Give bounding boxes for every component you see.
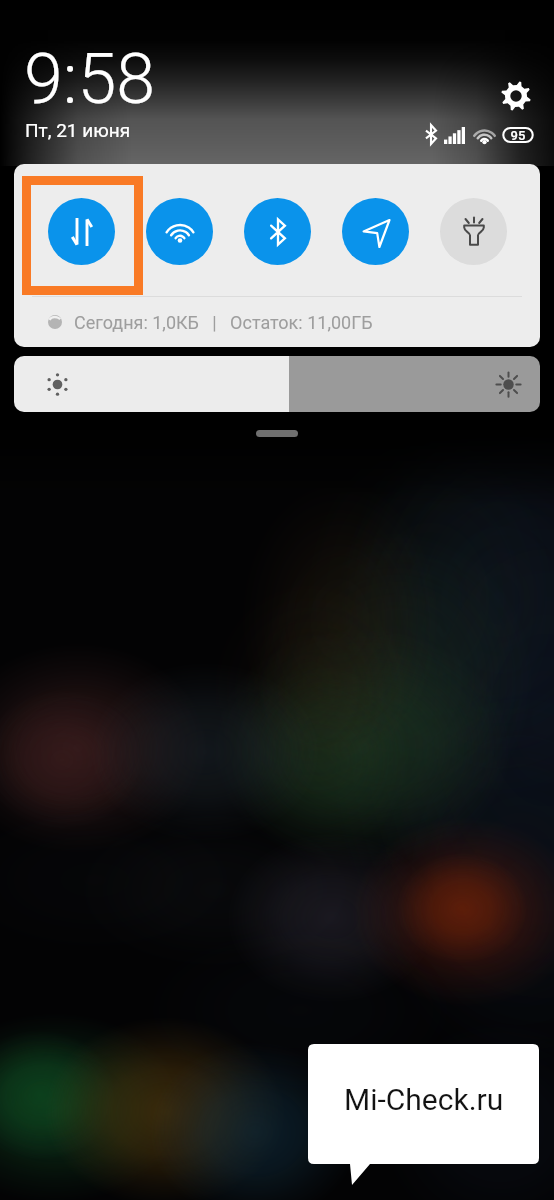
staticText: Пт, 21 июня xyxy=(25,119,131,141)
staticText: Mi-Check.ru xyxy=(344,1082,504,1117)
button[interactable]: Wi-Fi xyxy=(146,198,213,265)
button[interactable]: Mi-Check.ru xyxy=(308,1044,540,1189)
staticText: 95 xyxy=(509,128,527,143)
button[interactable] xyxy=(14,356,540,412)
button[interactable]: Flashlight xyxy=(440,198,507,265)
staticText: 9:58 xyxy=(24,38,156,120)
staticText: Сегодня: 1,0КБ | Остаток: 11,00ГБ xyxy=(74,312,373,333)
button[interactable]: Mobile data xyxy=(48,198,115,265)
button[interactable]: Settings xyxy=(496,76,536,116)
button[interactable]: Location xyxy=(342,198,409,265)
button[interactable]: Bluetooth xyxy=(244,198,311,265)
